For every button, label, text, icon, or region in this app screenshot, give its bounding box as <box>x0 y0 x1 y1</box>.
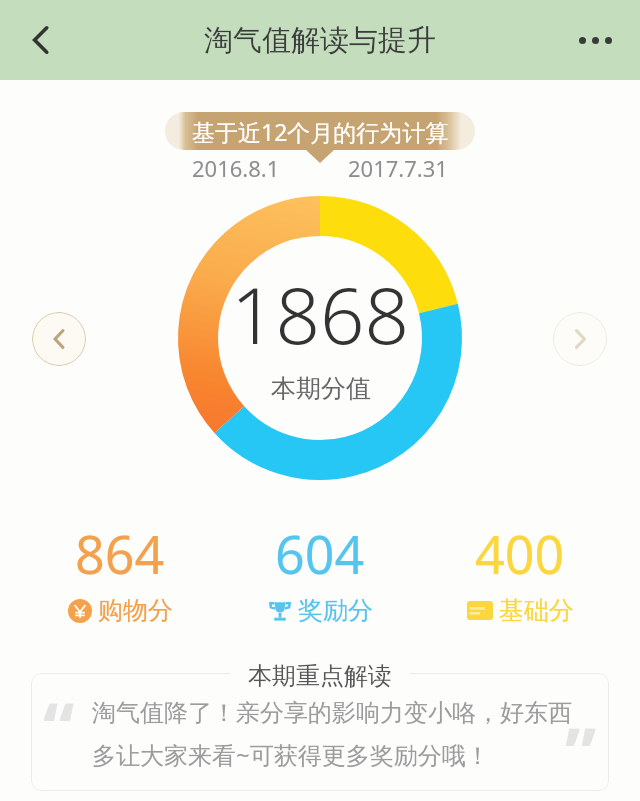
staticText: 本期重点解读 <box>248 661 392 691</box>
staticText: 淘气值降了！亲分享的影响力变小咯，好东西 <box>92 698 572 728</box>
staticText: 604 <box>275 518 365 589</box>
button[interactable]: 400 <box>420 518 620 626</box>
button[interactable]: 864 <box>20 518 220 626</box>
staticText: 2017.7.31 <box>348 153 448 183</box>
staticText: 多让大家来看~可获得更多奖励分哦！ <box>92 738 490 771</box>
button[interactable]: Next period <box>553 312 607 366</box>
button[interactable]: Back <box>12 11 70 69</box>
staticText: 淘气值解读与提升 <box>204 22 436 59</box>
staticText: 奖励分 <box>298 595 373 626</box>
staticText: 864 <box>75 518 165 589</box>
button[interactable]: 604 <box>220 518 420 626</box>
staticText: 1868 <box>231 261 410 367</box>
staticText: ” <box>565 704 597 791</box>
button[interactable]: Previous period <box>32 312 86 366</box>
staticText: 基础分 <box>499 595 574 626</box>
staticText: 2016.8.1 <box>192 153 280 183</box>
staticText: 购物分 <box>98 595 173 626</box>
staticText: “ <box>43 679 75 774</box>
staticText: 400 <box>475 518 565 589</box>
staticText: 本期分值 <box>271 373 371 404</box>
staticText: 基于近12个月的行为计算 <box>192 116 449 147</box>
button[interactable]: More options <box>566 11 624 69</box>
